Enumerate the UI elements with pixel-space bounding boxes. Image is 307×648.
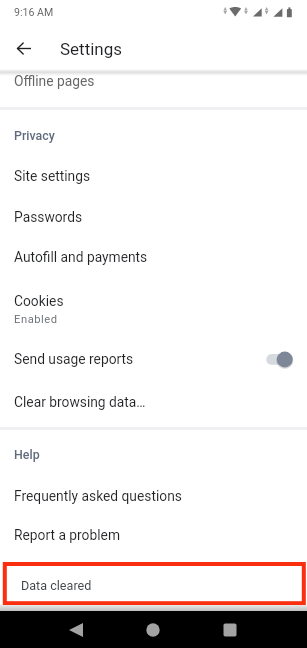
button[interactable]: Back [58, 611, 94, 647]
button[interactable]: Offline pages [0, 71, 307, 107]
staticText: Privacy [14, 128, 55, 143]
staticText: Offline pages [14, 73, 95, 89]
staticText: Data cleared [21, 578, 92, 593]
button[interactable]: Navigation button [212, 615, 248, 645]
button[interactable]: Autofill and payments [0, 233, 307, 274]
button[interactable]: Navigate up [5, 29, 43, 67]
button[interactable]: Site settings [0, 152, 307, 192]
button[interactable]: Cookies [0, 276, 307, 328]
staticText: Autofill and payments [14, 249, 148, 265]
button[interactable]: Passwords [0, 192, 307, 233]
staticText: Passwords [14, 209, 83, 225]
staticText: Clear browsing data… [14, 394, 146, 410]
button[interactable]: Frequently asked questions [0, 471, 307, 510]
staticText: 9:16 AM [14, 6, 54, 18]
staticText: Help [14, 447, 40, 462]
staticText: Settings [60, 39, 123, 59]
button[interactable]: Report a problem [0, 510, 307, 549]
staticText: Report a problem [14, 527, 120, 543]
button[interactable]: Send usage reports [0, 335, 307, 377]
staticText: Frequently asked questions [14, 488, 182, 504]
staticText: Cookies [14, 293, 64, 309]
staticText: Enabled [14, 313, 58, 326]
button[interactable]: Navigation button [135, 615, 171, 645]
staticText: Site settings [14, 168, 91, 184]
button[interactable]: Navigation button [58, 615, 94, 645]
staticText: Send usage reports [14, 351, 134, 367]
button[interactable]: Clear browsing data… [0, 377, 307, 419]
